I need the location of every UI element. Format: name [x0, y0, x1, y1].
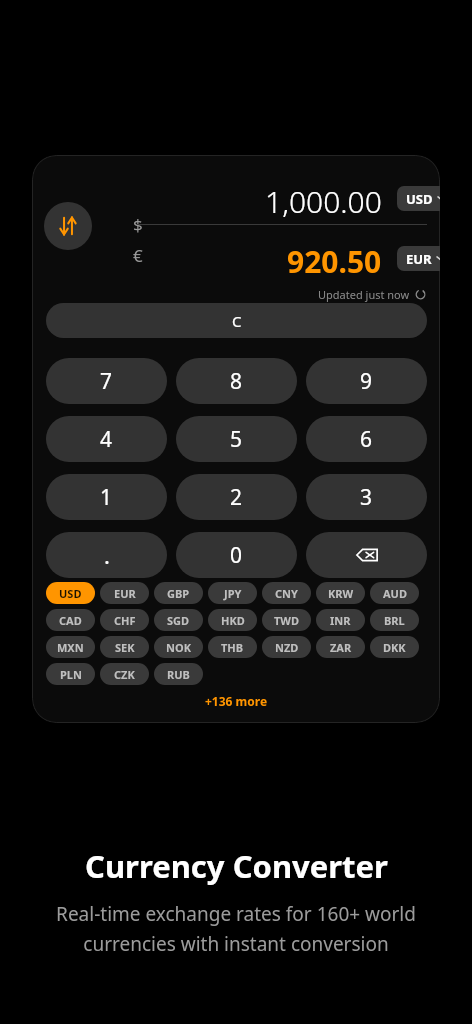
staticText: € [133, 244, 143, 267]
staticText: ZAR [330, 640, 352, 655]
button[interactable]: 7 [46, 358, 167, 404]
button[interactable]: . [46, 532, 167, 578]
button[interactable]: 8 [176, 358, 297, 404]
button[interactable]: USD [46, 582, 95, 604]
button[interactable]: INR [316, 609, 365, 631]
button[interactable]: JPY [208, 582, 257, 604]
staticText: CHF [114, 613, 136, 628]
staticText: DKK [383, 640, 406, 655]
button[interactable]: CAD [46, 609, 95, 631]
staticText: $ [133, 213, 143, 236]
button[interactable]: HKD [208, 609, 257, 631]
staticText: USD [406, 190, 433, 208]
button[interactable]: USD [397, 186, 440, 211]
staticText: TWD [274, 613, 300, 628]
staticText: C [232, 311, 242, 331]
staticText: INR [330, 613, 351, 628]
button[interactable]: NZD [262, 636, 311, 658]
button[interactable]: CZK [100, 663, 149, 685]
button[interactable]: SGD [154, 609, 203, 631]
staticText: CNY [275, 586, 298, 601]
button[interactable]: KRW [316, 582, 365, 604]
staticText: 1 [100, 483, 113, 512]
button[interactable]: Backspace [306, 532, 427, 578]
staticText: 5 [230, 425, 243, 454]
staticText: 4 [100, 425, 113, 454]
staticText: GBP [167, 586, 190, 601]
staticText: 8 [230, 367, 243, 396]
button[interactable]: EUR [397, 246, 440, 271]
button[interactable]: RUB [154, 663, 203, 685]
staticText: SGD [167, 613, 190, 628]
staticText: 920.50 [287, 241, 382, 282]
staticText: +136 more [205, 693, 268, 709]
staticText: CZK [114, 667, 135, 682]
button[interactable]: GBP [154, 582, 203, 604]
button[interactable]: CHF [100, 609, 149, 631]
button[interactable]: SEK [100, 636, 149, 658]
staticText: EUR [114, 586, 136, 601]
button[interactable]: 6 [306, 416, 427, 462]
staticText: SEK [115, 640, 135, 655]
button[interactable]: 0 [176, 532, 297, 578]
staticText: AUD [383, 586, 407, 601]
staticText: 7 [100, 367, 113, 396]
button[interactable]: 4 [46, 416, 167, 462]
staticText: CAD [59, 613, 82, 628]
staticText: MXN [57, 640, 84, 655]
staticText: Currency Converter [85, 845, 388, 887]
button[interactable]: 1 [46, 474, 167, 520]
button[interactable]: C [46, 303, 427, 338]
button[interactable]: THB [208, 636, 257, 658]
staticText: PLN [60, 667, 82, 682]
button[interactable]: 2 [176, 474, 297, 520]
button[interactable]: +136 more [32, 691, 440, 711]
staticText: 9 [360, 367, 373, 396]
button[interactable]: EUR [100, 582, 149, 604]
staticText: USD [59, 586, 82, 601]
button[interactable]: PLN [46, 663, 95, 685]
staticText: Updated just now [318, 287, 410, 302]
staticText: . [104, 540, 110, 570]
button[interactable]: 3 [306, 474, 427, 520]
staticText: HKD [221, 613, 245, 628]
button[interactable]: BRL [370, 609, 419, 631]
staticText: BRL [384, 613, 405, 628]
button[interactable]: 9 [306, 358, 427, 404]
staticText: 2 [230, 483, 243, 512]
staticText: 1,000.00 [265, 181, 382, 222]
staticText: 3 [360, 483, 373, 512]
button[interactable]: 5 [176, 416, 297, 462]
button[interactable]: ZAR [316, 636, 365, 658]
staticText: 6 [360, 425, 373, 454]
staticText: Real-time exchange rates for 160+ world … [28, 901, 444, 956]
button[interactable]: NOK [154, 636, 203, 658]
staticText: NOK [166, 640, 191, 655]
staticText: KRW [328, 586, 354, 601]
button[interactable]: Updated just now [282, 286, 426, 302]
button[interactable]: MXN [46, 636, 95, 658]
button[interactable]: DKK [370, 636, 419, 658]
staticText: EUR [406, 250, 432, 268]
staticText: THB [221, 640, 244, 655]
staticText: NZD [275, 640, 299, 655]
button[interactable]: AUD [370, 582, 419, 604]
button[interactable]: TWD [262, 609, 311, 631]
staticText: RUB [167, 667, 190, 682]
staticText: JPY [224, 586, 242, 601]
button[interactable]: CNY [262, 582, 311, 604]
staticText: 0 [230, 541, 243, 570]
button[interactable]: Swap currencies [44, 202, 92, 250]
